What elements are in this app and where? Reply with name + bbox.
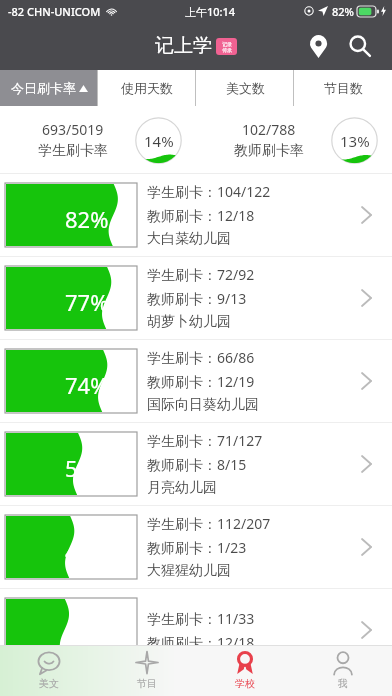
button[interactable]: 美文数 <box>196 70 294 106</box>
staticText: 节目 <box>137 677 157 690</box>
staticText: 记录 <box>222 41 232 47</box>
staticText: 美文数 <box>226 80 265 96</box>
button[interactable]: 今日刷卡率 <box>0 70 98 106</box>
staticText: 我 <box>338 677 348 690</box>
button[interactable]: Search <box>342 28 378 64</box>
other: Details <box>354 286 378 310</box>
staticText: 102/788 <box>242 120 296 139</box>
button[interactable]: 45% <box>0 589 392 671</box>
staticText: 月亮幼儿园 <box>147 479 217 497</box>
button[interactable]: 节目 <box>98 645 196 696</box>
staticText: 13% <box>340 131 370 151</box>
button[interactable]: 82% <box>0 174 392 256</box>
staticText: 胡萝卜幼儿园 <box>147 313 231 331</box>
other: Details <box>354 203 378 227</box>
staticText: 82% <box>332 4 354 19</box>
staticText: 55% <box>65 453 109 483</box>
button[interactable]: 节目数 <box>294 70 392 106</box>
staticText: 49% <box>65 536 109 566</box>
staticText: 14% <box>144 131 174 151</box>
other: Details <box>354 452 378 476</box>
staticText: 学生刷卡：71/127 <box>147 431 263 450</box>
staticText: 记上学 <box>155 34 212 58</box>
staticText: 教师刷卡：8/15 <box>147 455 247 474</box>
staticText: 学生刷卡：11/33 <box>147 609 255 628</box>
staticText: 82% <box>65 204 109 234</box>
other: Details <box>354 618 378 642</box>
staticText: 学生刷卡：66/86 <box>147 348 255 367</box>
staticText: 教师刷卡率 <box>234 142 304 160</box>
staticText: 74% <box>65 370 109 400</box>
staticText: 国际向日葵幼儿园 <box>147 396 259 414</box>
staticText: 教师刷卡：12/18 <box>147 206 255 225</box>
button[interactable]: 55% <box>0 423 392 505</box>
staticText: 大白菜幼儿园 <box>147 230 231 248</box>
staticText: 节目数 <box>324 80 363 96</box>
staticText: 学生刷卡：112/207 <box>147 514 271 533</box>
staticText: 教师刷卡：9/13 <box>147 289 247 308</box>
staticText: -82 CHN-UNICOM <box>8 4 101 19</box>
staticText: 教师刷卡：12/18 <box>147 633 255 652</box>
staticText: 693/5019 <box>42 120 104 139</box>
staticText: 今日刷卡率 <box>11 80 76 96</box>
button[interactable]: 使用天数 <box>98 70 196 106</box>
staticText: 77% <box>65 287 109 317</box>
button[interactable]: 77% <box>0 257 392 339</box>
staticText: 学生刷卡：104/122 <box>147 182 271 201</box>
staticText: 教师刷卡：1/23 <box>147 538 247 557</box>
button[interactable]: Location <box>300 28 336 64</box>
button[interactable]: 美文 <box>0 645 98 696</box>
staticText: 45% <box>65 619 109 649</box>
staticText: 学生刷卡：72/92 <box>147 265 255 284</box>
other: Details <box>354 369 378 393</box>
staticText: 学生刷卡率 <box>38 142 108 160</box>
button[interactable]: 学校 <box>196 645 294 696</box>
other: Details <box>354 535 378 559</box>
button[interactable]: 我 <box>294 645 392 696</box>
button[interactable]: 49% <box>0 506 392 588</box>
staticText: 使用天数 <box>121 80 173 96</box>
staticText: 学校 <box>235 677 255 690</box>
staticText: 大猩猩幼儿园 <box>147 562 231 580</box>
button[interactable]: 74% <box>0 340 392 422</box>
staticText: 美文 <box>39 677 59 690</box>
staticText: 传承 <box>222 47 232 53</box>
staticText: 教师刷卡：12/19 <box>147 372 255 391</box>
staticText: 上午10:14 <box>185 4 236 19</box>
